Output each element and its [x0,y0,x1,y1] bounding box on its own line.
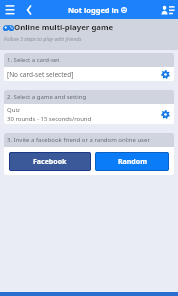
staticText: Quiz [7,106,20,114]
staticText: Facebook [33,157,67,167]
button[interactable]: Facebook [9,152,91,171]
button[interactable]: Back [22,3,36,17]
staticText: 2. Select a game and setting [7,93,87,101]
staticText: 1. Select a card-set [7,56,60,64]
button[interactable]: Menu [1,1,19,19]
staticText: [No card-set selected] [7,70,74,79]
button[interactable]: Account [160,2,176,18]
staticText: Not logged in [68,5,119,15]
button[interactable]: Random [95,152,169,171]
staticText: Random [118,157,147,167]
staticText: 30 rounds - 15 seconds/round [7,115,92,123]
staticText: Follow 3 steps to play with friends [4,35,82,42]
staticText: Online multi-player game [14,22,114,33]
button[interactable]: Settings [159,108,171,120]
button[interactable]: Settings [159,68,171,80]
staticText: 3. Invite a facebook friend or a random … [7,136,150,144]
